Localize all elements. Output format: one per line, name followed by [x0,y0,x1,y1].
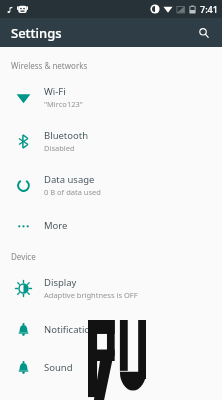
staticText: Wi-Fi [44,85,66,98]
button[interactable]: Notifications [0,310,222,348]
button[interactable]: Search [193,22,215,44]
button[interactable]: Wi-Fi [0,75,222,119]
staticText: More [44,219,68,232]
staticText: Wireless & networks [11,60,88,71]
staticText: 0 B of data used [44,187,101,197]
staticText: Bluetooth [44,129,89,142]
button[interactable]: Data usage [0,163,222,207]
button[interactable]: More [0,207,222,243]
staticText: Device [11,251,36,262]
staticText: Sound [44,361,73,374]
button[interactable]: Display [0,266,222,310]
staticText: Display [44,276,77,289]
staticText: Data usage [44,173,95,186]
staticText: 7:41 [200,3,218,15]
staticText: Adaptive brightness is OFF [44,290,138,300]
staticText: Settings [11,24,62,42]
staticText: Disabled [44,143,75,153]
button[interactable]: Bluetooth [0,119,222,163]
button[interactable]: Sound [0,348,222,386]
staticText: "Mirco123" [44,99,83,109]
staticText: Notifications [44,323,101,336]
